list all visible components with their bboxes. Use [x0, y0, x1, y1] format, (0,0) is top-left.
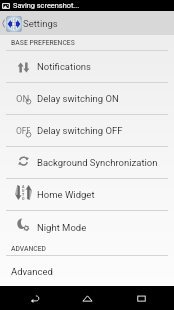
button[interactable]: ON: [0, 83, 174, 114]
staticText: Night Mode: [37, 222, 87, 233]
staticText: Saving screenshot...: [13, 1, 80, 10]
button[interactable]: Back: [14, 286, 54, 310]
staticText: Notifications: [37, 61, 92, 72]
staticText: Advanced: [11, 266, 53, 277]
staticText: Delay switching ON: [37, 93, 119, 104]
staticText: Background Synchronization: [37, 157, 158, 168]
button[interactable]: Notifications: [0, 51, 174, 82]
button[interactable]: OFF: [0, 115, 174, 146]
staticText: Settings: [23, 18, 58, 29]
button[interactable]: Settings: [0, 11, 174, 35]
staticText: ADVANCED: [11, 245, 47, 253]
button[interactable]: Advanced: [0, 256, 174, 286]
staticText: A: [22, 185, 25, 189]
staticText: O: [22, 197, 25, 200]
staticText: T: [22, 193, 25, 197]
staticText: Home Widget: [37, 189, 95, 200]
staticText: U: [22, 189, 25, 193]
button[interactable]: Background Synchronization: [0, 147, 174, 178]
button[interactable]: Recent apps: [121, 286, 161, 310]
button[interactable]: A: [0, 179, 174, 210]
staticText: ON: [16, 93, 30, 104]
button[interactable]: Home: [67, 286, 107, 310]
staticText: OFF: [16, 126, 30, 136]
staticText: Delay switching OFF: [37, 125, 123, 136]
button[interactable]: Night Mode: [0, 211, 174, 243]
staticText: BASE PREFERENCES: [11, 39, 75, 47]
